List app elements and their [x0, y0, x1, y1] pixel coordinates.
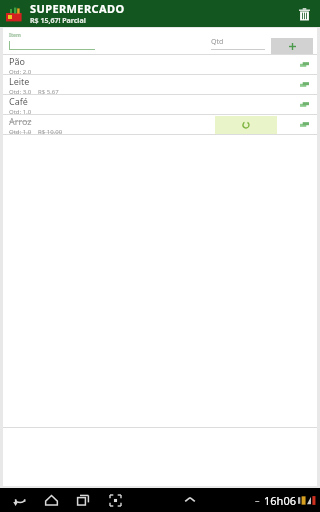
staticText: Qtd: 1,0 [9, 128, 32, 134]
button[interactable]: Back [8, 489, 30, 511]
staticText: Pão [9, 55, 25, 67]
button[interactable]: Leite [3, 75, 317, 95]
button[interactable]: Recents [72, 489, 94, 511]
staticText: Arroz [9, 115, 32, 127]
button[interactable]: Home [40, 489, 62, 511]
staticText: Item [9, 32, 21, 39]
button[interactable]: Delete list [292, 2, 316, 26]
staticText: Qtd: 1,0 [9, 108, 32, 114]
button[interactable]: Set price [291, 75, 317, 94]
staticText: R$ 10,00 [38, 128, 63, 134]
button[interactable]: Arroz [3, 115, 317, 135]
button[interactable]: Pão [3, 55, 317, 75]
staticText: Leite [9, 75, 30, 87]
staticText: Café [9, 95, 28, 107]
staticText: 16h06 [264, 493, 296, 508]
staticText: – [255, 494, 260, 506]
staticText: Qtd [211, 37, 224, 47]
button[interactable]: Set price [291, 55, 317, 74]
button[interactable]: Screenshot [104, 489, 126, 511]
button[interactable]: Café [3, 95, 317, 115]
button[interactable]: Undo [215, 116, 277, 134]
staticText: R$ 15,67! Parcial [30, 16, 86, 26]
button[interactable]: Set price [291, 115, 317, 134]
staticText: Qtd: 3,0 [9, 88, 32, 94]
button[interactable]: Add item [271, 38, 313, 54]
button[interactable]: Set price [291, 95, 317, 114]
staticText: R$ 5,67 [38, 88, 59, 94]
staticText: Qtd: 2,0 [9, 68, 32, 74]
button[interactable]: Expand [179, 489, 201, 511]
staticText: SUPERMERCADO [30, 1, 125, 16]
button[interactable] [9, 41, 95, 50]
